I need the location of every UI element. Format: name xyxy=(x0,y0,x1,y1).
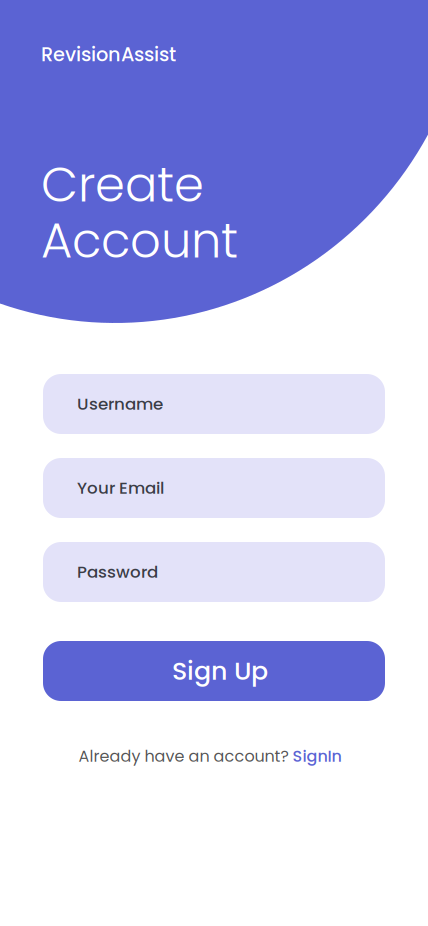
button[interactable]: Sign Up xyxy=(43,641,385,701)
button[interactable]: Your Email xyxy=(43,458,385,518)
staticText: Already have an account? xyxy=(78,745,292,767)
staticText: Password xyxy=(77,560,158,584)
staticText: RevisionAssist xyxy=(41,41,176,68)
staticText: Sign Up xyxy=(172,653,268,689)
button[interactable]: Username xyxy=(43,374,385,434)
staticText: Account xyxy=(41,207,238,274)
staticText: Username xyxy=(77,392,163,416)
staticText: SignIn xyxy=(292,745,341,767)
staticText: Create xyxy=(41,151,204,218)
staticText: Your Email xyxy=(77,476,164,500)
button[interactable]: SignIn xyxy=(292,745,341,767)
button[interactable]: Password xyxy=(43,542,385,602)
